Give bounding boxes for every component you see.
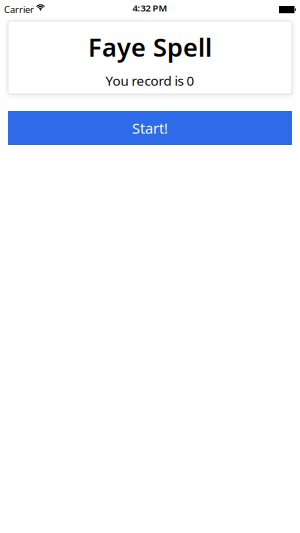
button[interactable]: Start! — [8, 111, 292, 145]
staticText: 4:32 PM — [132, 2, 167, 14]
staticText: Start! — [132, 118, 168, 138]
staticText: Carrier — [4, 3, 34, 16]
staticText: Faye Spell — [88, 30, 212, 64]
staticText: You record is 0 — [105, 72, 194, 89]
